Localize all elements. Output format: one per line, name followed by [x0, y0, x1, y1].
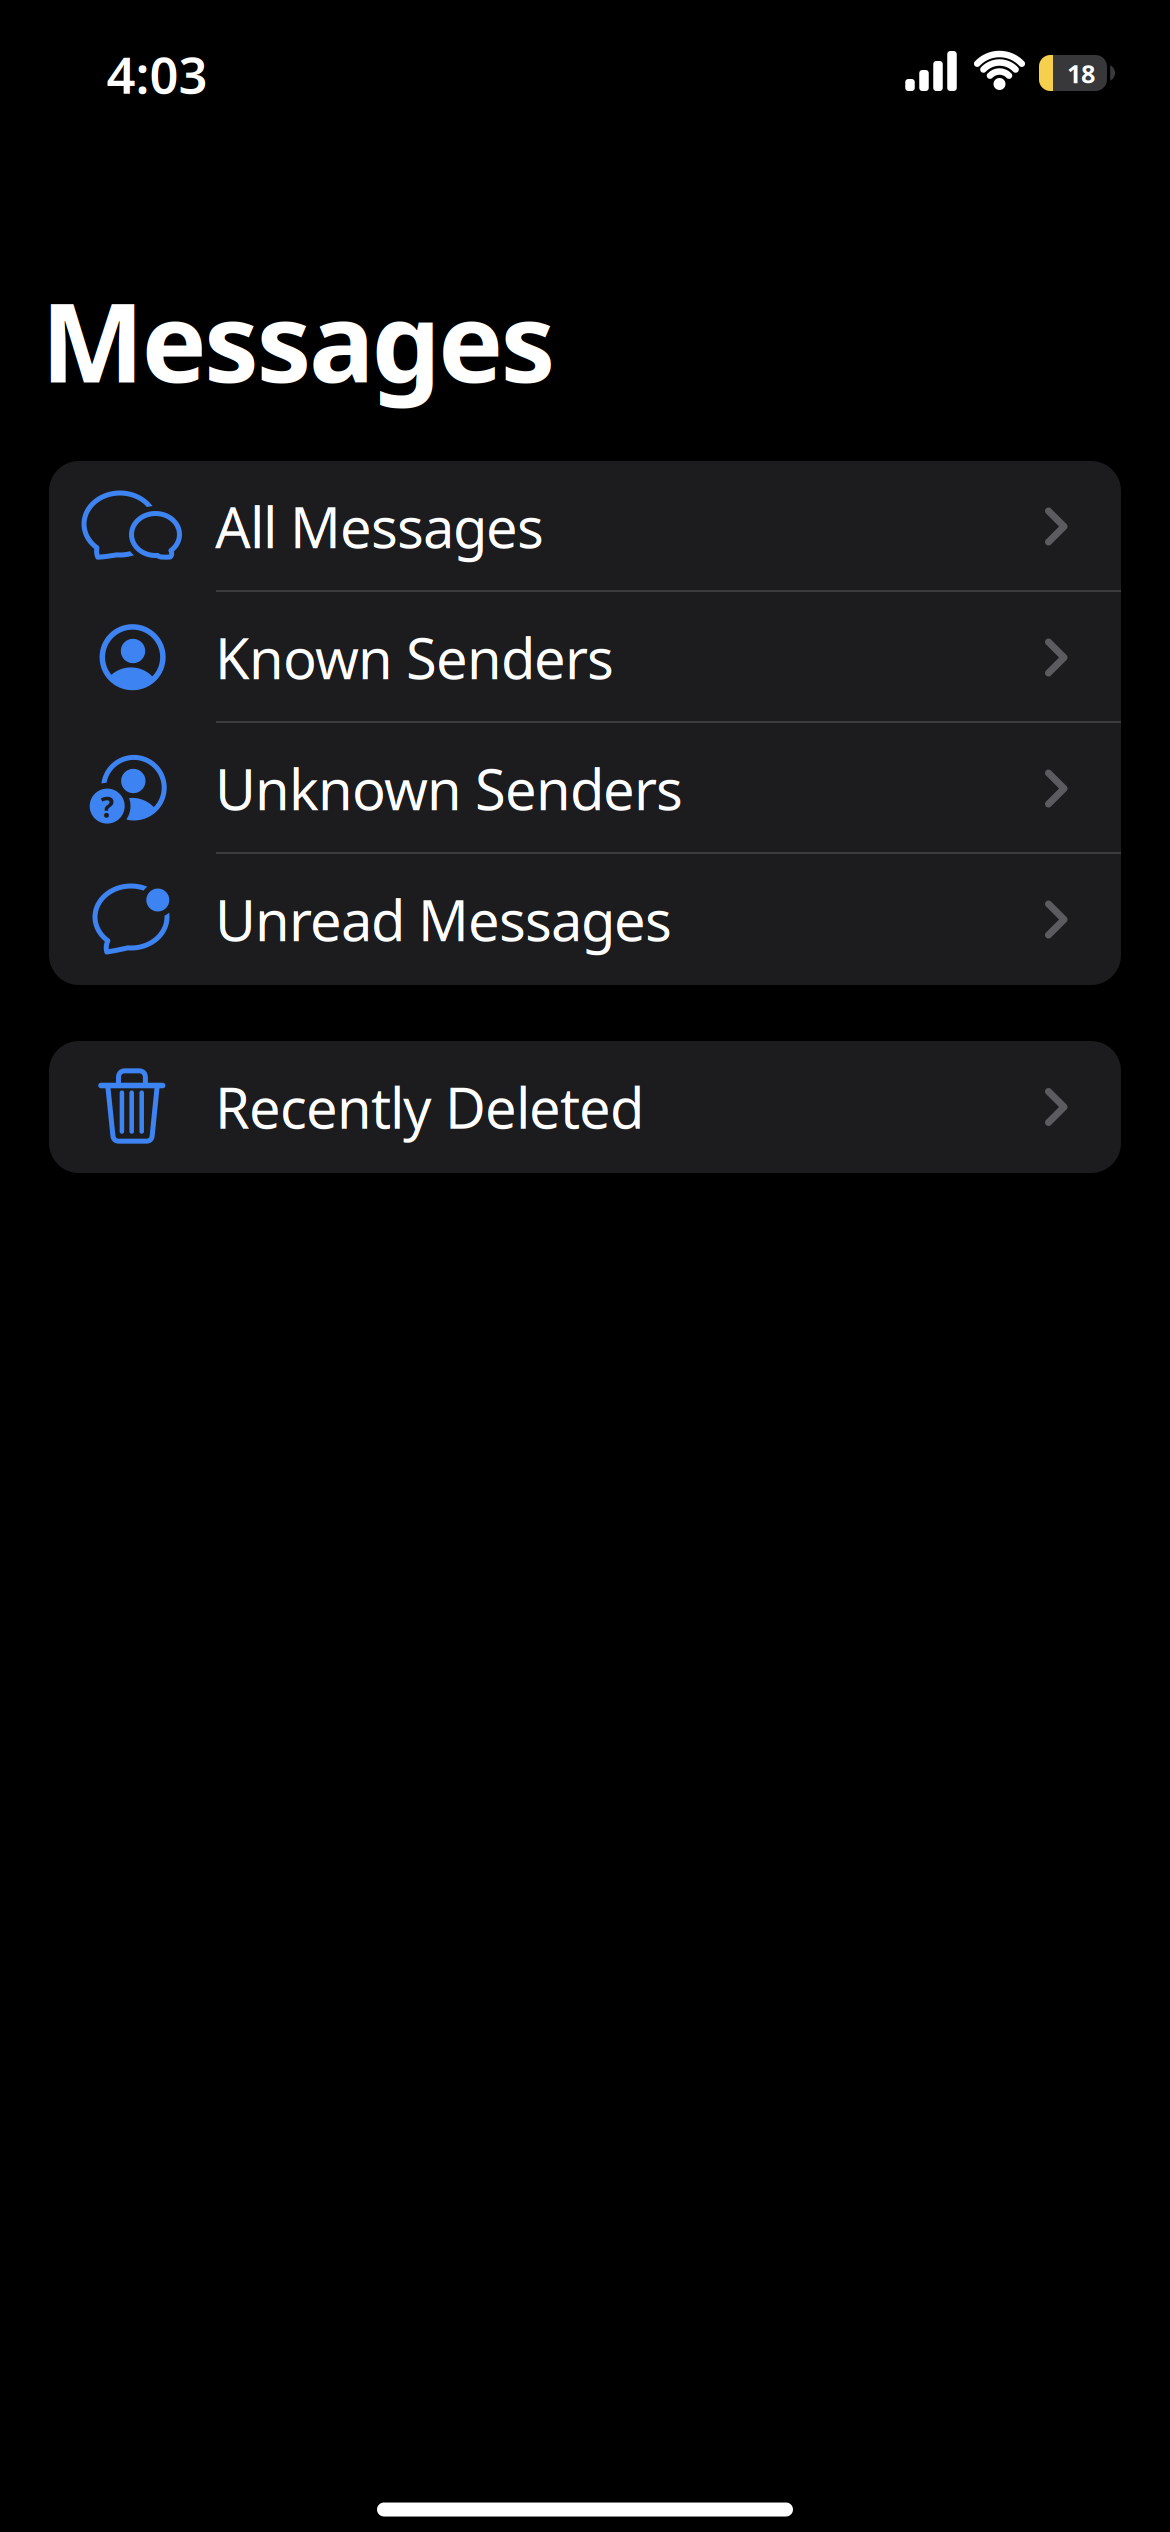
- staticText: ?: [101, 788, 114, 826]
- button[interactable]: Recently Deleted: [49, 1041, 1121, 1173]
- staticText: 4:03: [106, 40, 207, 108]
- button[interactable]: Unread Messages: [49, 854, 1121, 985]
- staticText: Unread Messages: [215, 882, 672, 957]
- button[interactable]: Known Senders: [49, 592, 1121, 723]
- staticText: 18: [1067, 57, 1095, 90]
- button[interactable]: All Messages: [49, 461, 1121, 592]
- staticText: Known Senders: [215, 620, 614, 695]
- button[interactable]: ?: [49, 723, 1121, 854]
- staticText: All Messages: [215, 489, 544, 564]
- staticText: Recently Deleted: [215, 1070, 644, 1144]
- staticText: Unknown Senders: [215, 751, 683, 826]
- staticText: Messages: [41, 267, 555, 413]
